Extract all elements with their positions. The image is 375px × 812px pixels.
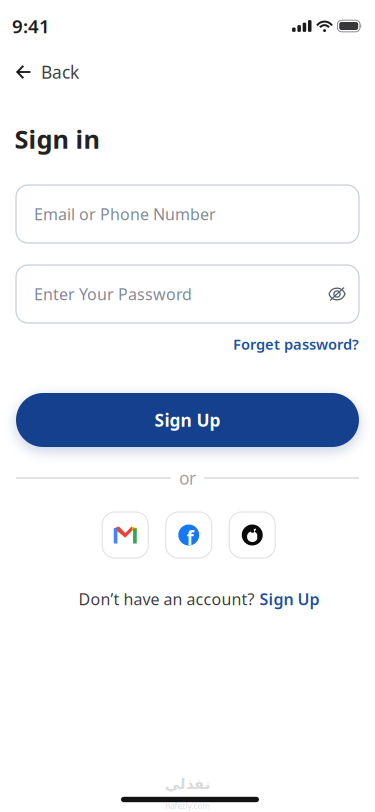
staticText: Email or Phone Number xyxy=(34,203,216,225)
button[interactable]: Sign in with Google xyxy=(102,512,148,558)
staticText: Sign in xyxy=(14,122,99,156)
button[interactable]: Show password xyxy=(324,283,350,305)
button[interactable]: Back xyxy=(16,60,79,83)
staticText: Don’t have an account? xyxy=(78,588,254,610)
staticText: Back xyxy=(41,60,79,83)
staticText: Sign Up xyxy=(154,408,220,431)
staticText: Sign Up xyxy=(259,588,319,610)
staticText: or xyxy=(179,466,196,489)
button[interactable]: Sign in with Facebook xyxy=(166,512,212,558)
button[interactable]: Sign Up xyxy=(259,588,319,610)
button[interactable]: Sign Up xyxy=(16,393,359,447)
staticText: Forget password? xyxy=(233,334,359,354)
button[interactable]: Forget password? xyxy=(233,334,359,354)
staticText: نفذلي xyxy=(164,776,210,792)
staticText: 9:41 xyxy=(12,14,50,38)
button[interactable]: Sign in with Apple xyxy=(229,512,275,558)
staticText: Enter Your Password xyxy=(34,283,192,305)
staticText: nafezly.com xyxy=(165,801,209,811)
staticText: f xyxy=(186,525,193,550)
